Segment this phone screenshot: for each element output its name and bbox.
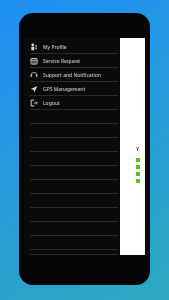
staticText: Logout	[43, 100, 60, 107]
other: My Profile	[30, 43, 38, 51]
staticText: Y	[136, 146, 140, 153]
button[interactable]: My Profile	[24, 40, 120, 54]
other: GPS Management	[30, 85, 38, 93]
other: Support and Notification	[30, 71, 38, 79]
staticText: My Profile	[43, 44, 67, 51]
staticText: Service Request	[43, 58, 81, 65]
button[interactable]: GPS Management	[24, 82, 120, 96]
staticText: GPS Management	[43, 86, 86, 93]
staticText: Support and Notification	[43, 72, 101, 79]
button[interactable]: Support and Notification	[24, 68, 120, 82]
other: Logout	[30, 99, 38, 107]
button[interactable]: Service Request	[24, 54, 120, 68]
other: Service Request	[30, 57, 38, 65]
button[interactable]: Logout	[24, 96, 120, 110]
